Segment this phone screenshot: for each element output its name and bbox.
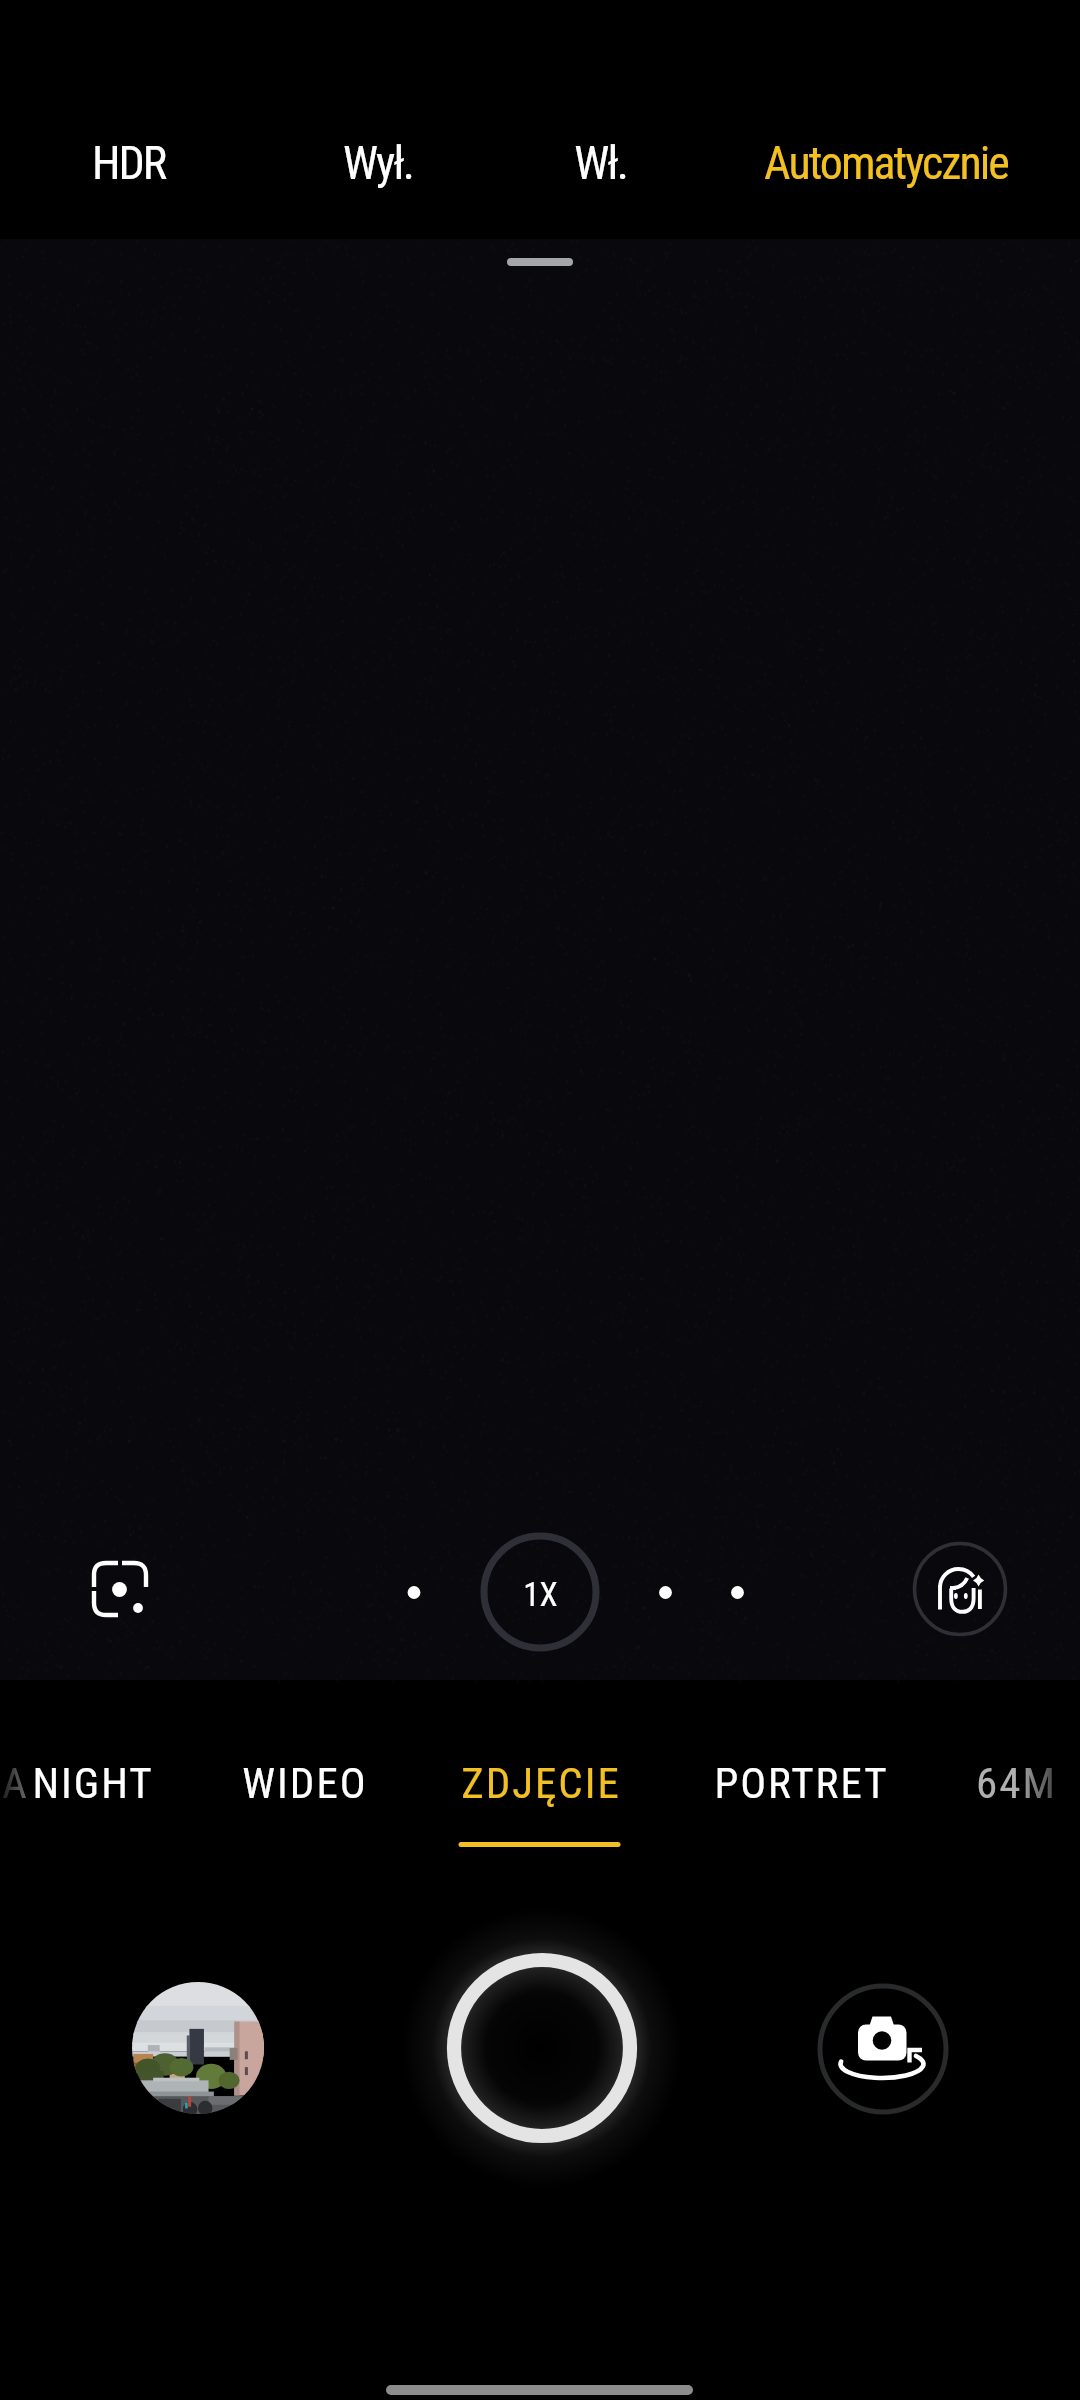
button[interactable]: NIGHT <box>23 1720 163 1848</box>
button[interactable]: HDR <box>92 0 182 239</box>
button[interactable]: Take photo <box>446 1952 638 2144</box>
button[interactable]: 1X <box>481 1533 599 1651</box>
staticText: WIDEO <box>242 1758 368 1808</box>
button[interactable]: PORTRET <box>698 1720 904 1848</box>
staticText: HDR <box>92 136 166 190</box>
staticText: NIGHT <box>32 1758 154 1808</box>
staticText: Automatycznie <box>764 136 1008 190</box>
staticText: PORTRET <box>714 1758 889 1808</box>
staticText: 64M <box>976 1758 1057 1808</box>
button[interactable]: ZDJĘCIE <box>443 1720 639 1848</box>
button[interactable]: Switch camera <box>817 1983 949 2115</box>
button[interactable]: Scene optimiser <box>74 1543 166 1635</box>
button[interactable]: A <box>0 1720 41 1848</box>
button[interactable]: 64M <box>956 1720 1076 1848</box>
button[interactable]: Beauty filter <box>912 1541 1008 1637</box>
button[interactable]: WIDEO <box>225 1720 385 1848</box>
staticText: A <box>2 1758 29 1808</box>
button[interactable]: Automatycznie <box>756 0 1016 239</box>
button[interactable]: Zoom 4x <box>718 1573 758 1613</box>
staticText: 1X <box>523 1575 558 1614</box>
staticText: Wł. <box>574 136 627 190</box>
button[interactable]: Zoom 2x <box>646 1573 686 1613</box>
button[interactable]: Wył. <box>318 0 438 239</box>
staticText: Wył. <box>343 136 413 190</box>
button[interactable]: Wł. <box>540 0 660 239</box>
button[interactable]: Zoom out <box>394 1573 434 1613</box>
button[interactable]: Open gallery <box>132 1982 264 2114</box>
staticText: ZDJĘCIE <box>461 1758 621 1808</box>
